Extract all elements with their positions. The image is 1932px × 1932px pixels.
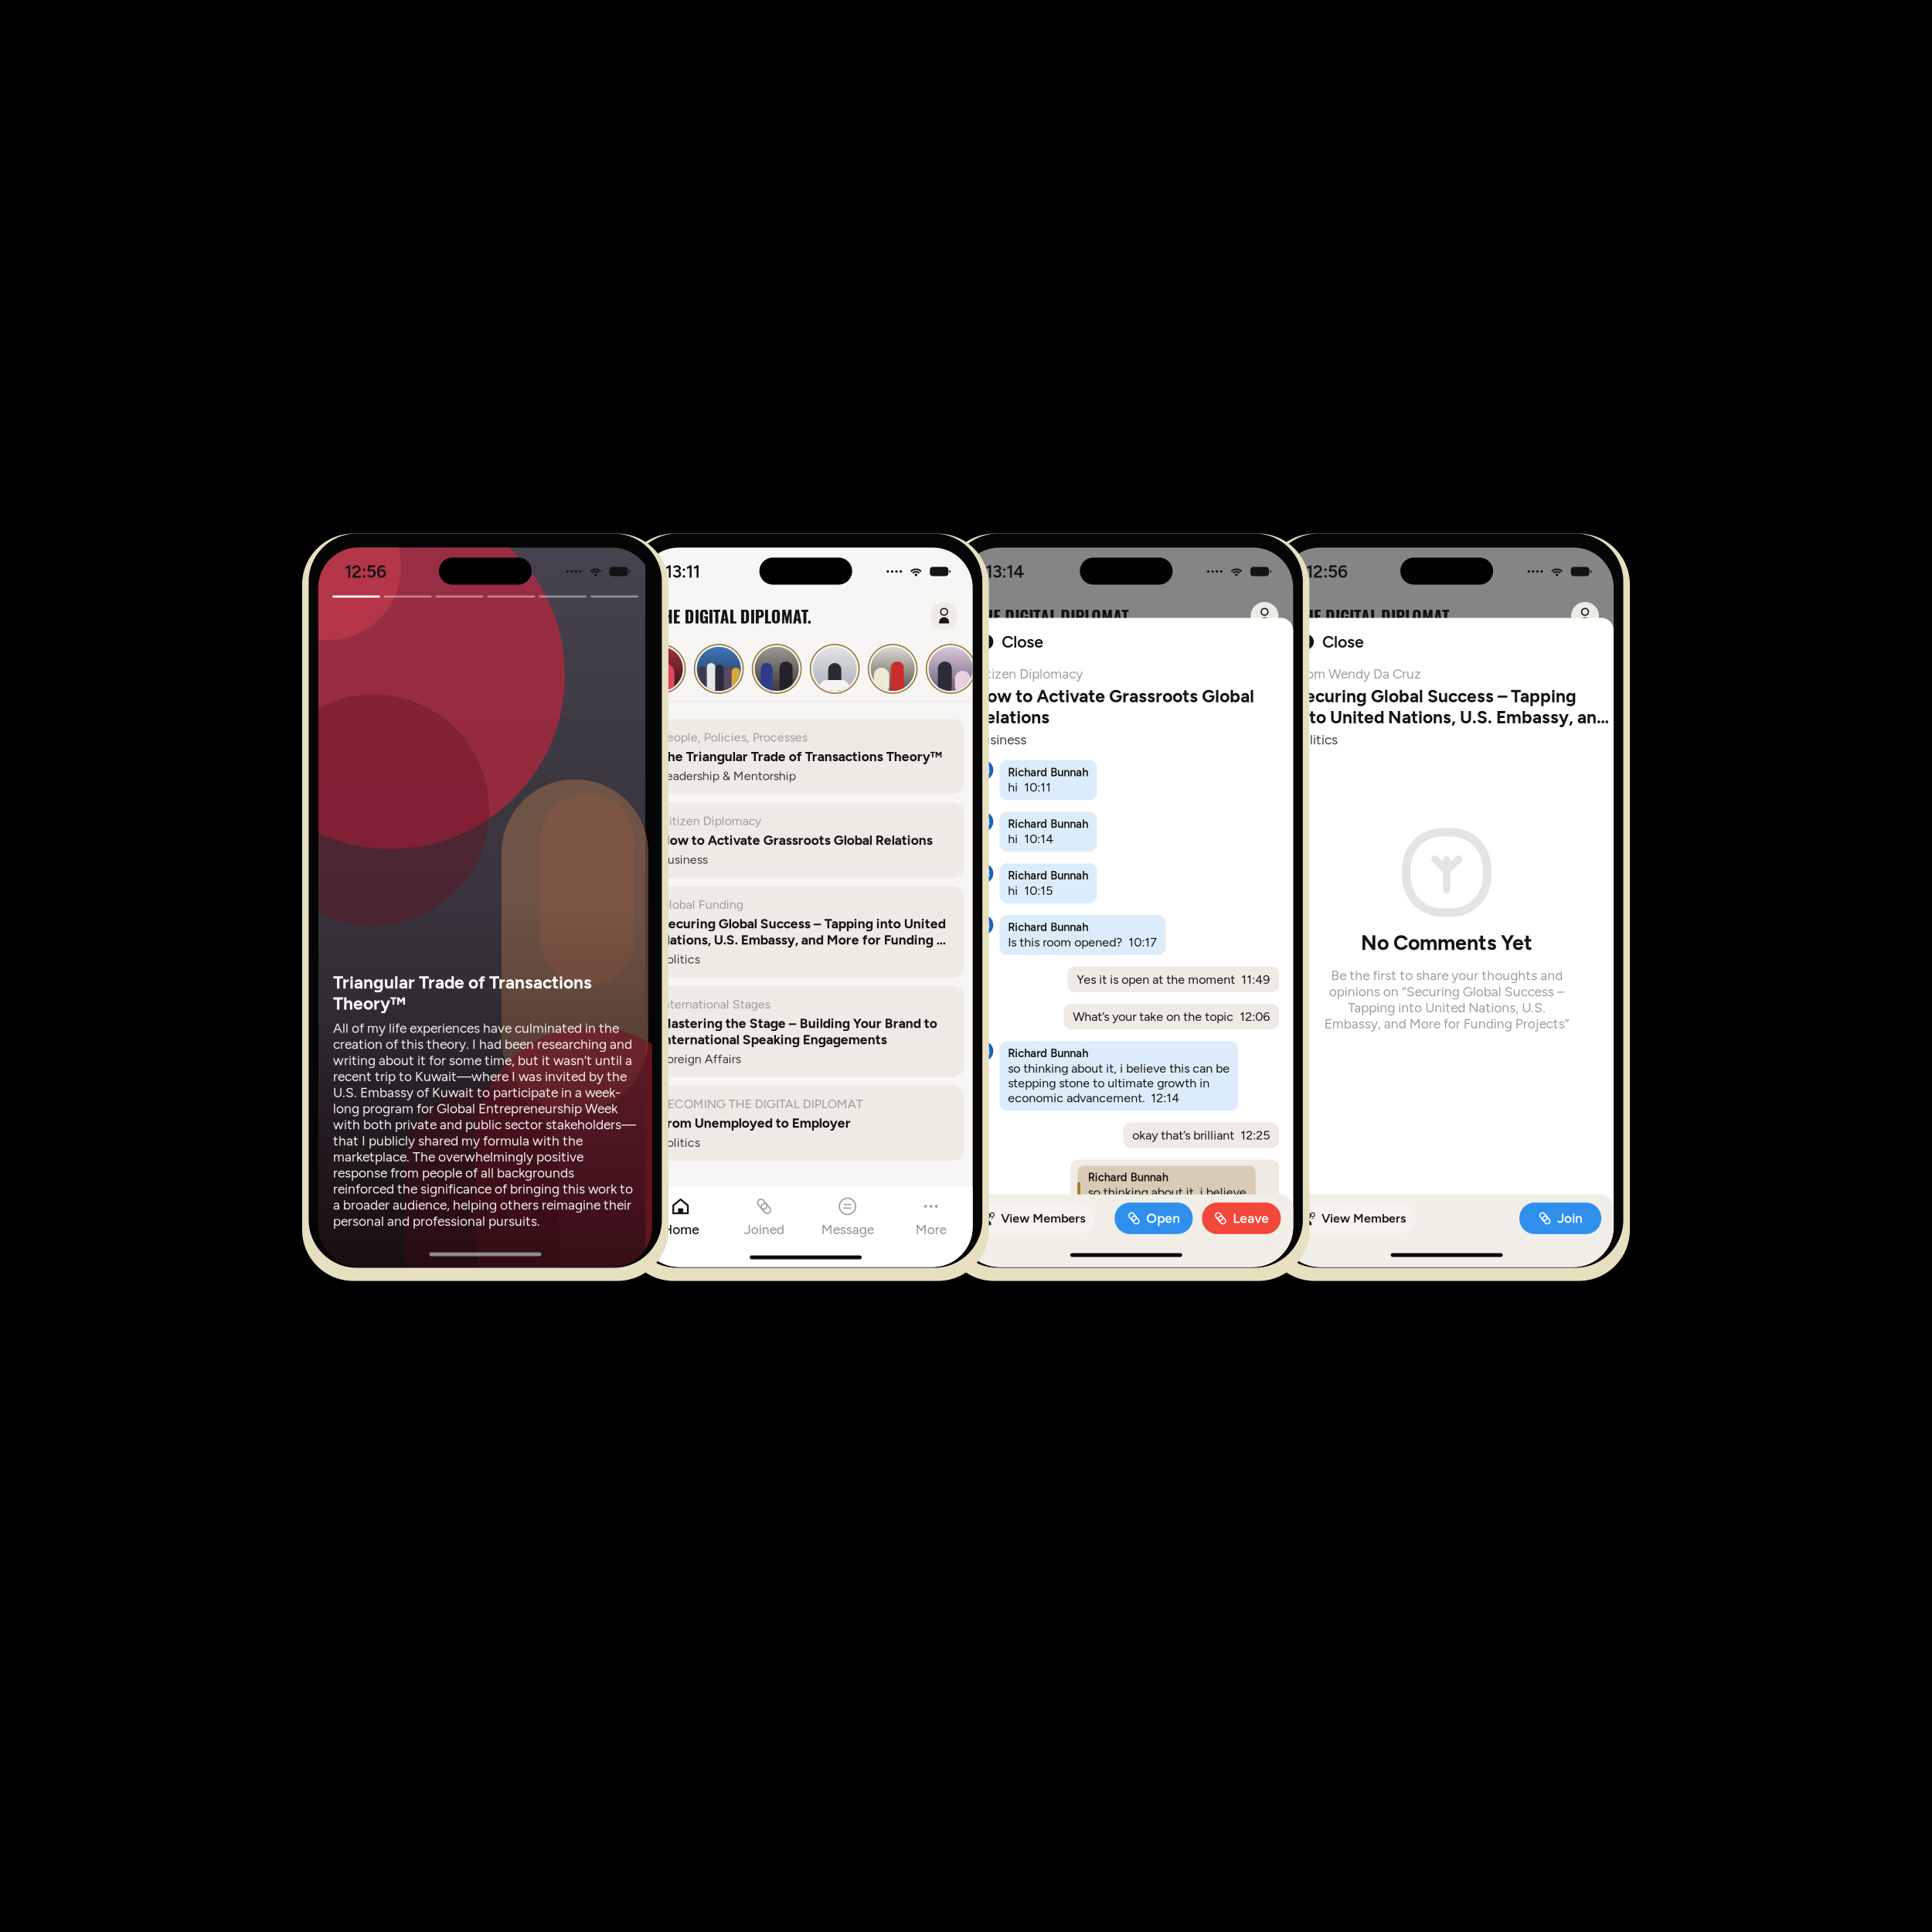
staticText: 13:14 xyxy=(986,561,1024,582)
staticText: Richard Bunnah xyxy=(1008,920,1088,934)
button[interactable]: Global Funding xyxy=(647,886,964,977)
staticText: All of my life experiences have culminat… xyxy=(333,1020,636,1229)
button[interactable]: Close xyxy=(1280,618,1614,666)
staticText: 12:56 xyxy=(345,561,386,582)
button[interactable]: Message xyxy=(806,1187,889,1241)
staticText: The Triangular Trade of Transactions The… xyxy=(660,748,942,765)
button[interactable]: Profile xyxy=(929,601,959,631)
staticText: hi 10:14 xyxy=(1008,831,1054,846)
staticText: View Members xyxy=(1001,1211,1085,1226)
button[interactable]: Join xyxy=(1519,1203,1601,1234)
staticText: THE DIGITAL DIPLOMAT. xyxy=(976,604,1132,628)
staticText: RB xyxy=(977,919,990,931)
staticText: Richard Bunnah xyxy=(1008,1046,1088,1060)
staticText: View Members xyxy=(1321,1211,1406,1226)
staticText: Close xyxy=(1322,632,1364,652)
button[interactable]: Story xyxy=(868,644,917,694)
button[interactable]: View Members xyxy=(1292,1203,1416,1233)
staticText: okay that’s brilliant 12:25 xyxy=(1132,1128,1270,1143)
staticText: From Unemployed to Employer xyxy=(660,1115,851,1131)
button[interactable]: Joined xyxy=(722,1187,806,1241)
staticText: Yes it is open at the moment 11:49 xyxy=(1077,972,1270,987)
staticText: THE DIGITAL DIPLOMAT. xyxy=(656,604,811,628)
staticText: How to Activate Grassroots Global Relati… xyxy=(660,832,932,848)
staticText: Message xyxy=(821,1221,874,1237)
button[interactable]: Profile xyxy=(1250,601,1279,631)
staticText: Be the first to share your thoughts and … xyxy=(1324,967,1569,1032)
staticText: Politics xyxy=(1294,732,1338,748)
button[interactable]: Story xyxy=(694,644,744,694)
button[interactable]: Leave xyxy=(1202,1203,1281,1234)
staticText: Richard Bunnah xyxy=(1008,869,1088,882)
staticText: Business xyxy=(660,852,708,867)
staticText: No Comments Yet xyxy=(1361,930,1532,955)
staticText: 12:56 xyxy=(1306,561,1348,582)
button[interactable]: Citizen Diplomacy xyxy=(647,803,964,878)
staticText: RB xyxy=(977,816,990,828)
staticText: Richard Bunnah xyxy=(1008,765,1088,779)
staticText: RB xyxy=(977,867,990,880)
staticText: Close xyxy=(1002,632,1044,652)
staticText: THE DIGITAL DIPLOMAT. xyxy=(1297,604,1452,628)
staticText: Richard Bunnah xyxy=(1008,817,1088,831)
button[interactable]: More xyxy=(889,1187,973,1241)
staticText: RB xyxy=(977,764,990,776)
staticText: so thinking about it, i believe this can… xyxy=(1088,1185,1248,1229)
button[interactable]: Close xyxy=(959,618,1293,666)
staticText: Global Funding xyxy=(660,897,743,912)
button[interactable]: Story xyxy=(636,644,686,694)
staticText: Joined xyxy=(744,1221,784,1237)
staticText: Richard Bunnah xyxy=(1088,1170,1168,1184)
button[interactable]: International Stages xyxy=(647,986,964,1077)
staticText: Business xyxy=(974,732,1027,748)
staticText: Citizen Diplomacy xyxy=(660,813,761,828)
button[interactable]: Story xyxy=(810,644,860,694)
staticText: RB xyxy=(977,1045,990,1057)
button[interactable]: People, Policies, Processes xyxy=(647,719,964,794)
staticText: Citizen Diplomacy xyxy=(974,666,1083,682)
staticText: 13:11 xyxy=(665,561,700,582)
staticText: hi 10:15 xyxy=(1008,883,1053,898)
staticText: Join xyxy=(1557,1210,1583,1226)
staticText: Mastering the Stage – Building Your Bran… xyxy=(660,1015,937,1048)
button[interactable]: Story xyxy=(926,644,975,694)
staticText: Triangular Trade of Transactions Theory™ xyxy=(333,972,592,1014)
staticText: How to Activate Grassroots Global Relati… xyxy=(974,686,1254,728)
staticText: Foreign Affairs xyxy=(660,1051,741,1066)
staticText: Leadership & Mentorship xyxy=(660,768,796,783)
staticText: Leave xyxy=(1233,1210,1269,1226)
button[interactable]: Profile xyxy=(1570,601,1600,631)
button[interactable]: Home xyxy=(639,1187,722,1241)
staticText: From Wendy Da Cruz xyxy=(1294,666,1421,682)
staticText: What’s your take on the topic 12:06 xyxy=(1073,1009,1270,1024)
staticText: More xyxy=(916,1221,946,1237)
staticText: Is this room opened? 10:17 xyxy=(1008,935,1157,950)
button[interactable]: Story xyxy=(752,644,801,694)
staticText: Home xyxy=(662,1221,699,1237)
staticText: Open xyxy=(1146,1210,1180,1226)
staticText: Securing Global Success – Tapping into U… xyxy=(660,916,946,948)
staticText: Politics xyxy=(660,952,700,967)
staticText: hi 10:11 xyxy=(1008,780,1051,795)
button[interactable]: View Members xyxy=(972,1203,1095,1233)
staticText: BECOMING THE DIGITAL DIPLOMAT xyxy=(660,1096,863,1111)
button[interactable]: Open xyxy=(1115,1203,1193,1234)
staticText: People, Policies, Processes xyxy=(660,730,807,745)
staticText: Politics xyxy=(660,1135,700,1150)
staticText: International Stages xyxy=(660,997,770,1012)
button[interactable]: BECOMING THE DIGITAL DIPLOMAT xyxy=(647,1086,964,1161)
staticText: so thinking about it, i believe this can… xyxy=(1008,1061,1230,1105)
staticText: Securing Global Success – Tapping into U… xyxy=(1294,686,1609,728)
